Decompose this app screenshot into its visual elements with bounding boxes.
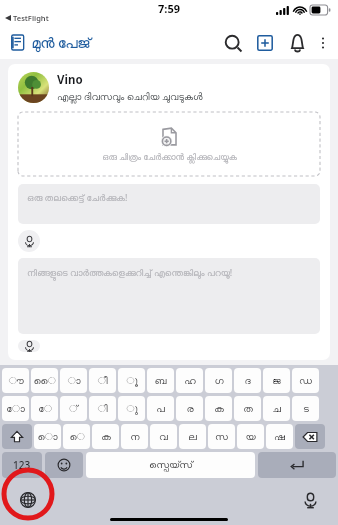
staticText: ൈ (33, 376, 56, 386)
button[interactable]: Return (258, 452, 336, 478)
button[interactable]: Profile picture (18, 72, 49, 103)
staticText: ബ (154, 376, 167, 386)
button[interactable]: നിങ്ങളുടെ വാർത്തകളെക്കുറിച്ച് എന്തെങ്കില… (18, 258, 320, 334)
staticText: പ (156, 404, 165, 414)
staticText: ി (97, 404, 108, 414)
button[interactable]: Dictation (296, 486, 324, 514)
button[interactable]: ര (176, 396, 203, 421)
staticText: ് (69, 404, 78, 414)
button[interactable]: ഒരു തലക്കെട്ട് ചേർക്കുക! (18, 184, 320, 224)
staticText: ോ (6, 404, 25, 414)
button[interactable]: ാ (60, 368, 87, 393)
staticText: ഹ (184, 376, 196, 386)
button[interactable]: മുൻ പേജ് (10, 33, 91, 52)
button[interactable]: Search (218, 28, 248, 58)
button[interactable]: More options (312, 32, 334, 54)
button[interactable]: ഒരു ചിത്രം ചേർക്കാൻ ക്ലിക്കുചെയ്യുക (18, 112, 320, 176)
staticText: ഒരു തലക്കെട്ട് ചേർക്കുക! (27, 191, 128, 203)
button[interactable]: ദ (234, 368, 261, 393)
button[interactable]: Voice input for body (18, 340, 40, 352)
button[interactable]: 123 (2, 452, 42, 478)
staticText: ു (126, 404, 138, 414)
button[interactable]: ജ (263, 368, 290, 393)
staticText: ര (186, 404, 194, 414)
staticText: ഗ (214, 376, 224, 386)
button[interactable]: ഷ (266, 424, 293, 449)
button[interactable]: ക (205, 396, 232, 421)
staticText: െ (69, 432, 85, 442)
staticText: ൂ (126, 376, 138, 386)
staticText: ക (214, 404, 224, 414)
staticText: ീ (97, 376, 108, 386)
staticText: വ (159, 432, 168, 442)
button[interactable]: ു (118, 396, 145, 421)
button[interactable]: പ (147, 396, 174, 421)
button[interactable]: െ (63, 424, 90, 449)
button[interactable]: ക (92, 424, 119, 449)
staticText: ന (130, 432, 140, 442)
staticText: 7:59 (158, 1, 180, 16)
staticText: ല (188, 432, 197, 442)
staticText: ൗ (8, 376, 24, 386)
button[interactable]: ച (263, 396, 290, 421)
staticText: 123 (13, 458, 31, 472)
staticText: ദ (244, 376, 251, 386)
staticText: മുൻ പേജ് (32, 33, 91, 52)
button[interactable]: ൊ (34, 424, 61, 449)
button[interactable]: ോ (2, 396, 29, 421)
button[interactable]: ഡ (292, 368, 319, 393)
button[interactable]: യ (237, 424, 264, 449)
staticText: ാ (67, 376, 81, 386)
button[interactable]: Notifications (282, 28, 312, 58)
button[interactable]: ി (89, 396, 116, 421)
staticText: യ (245, 432, 256, 442)
button[interactable]: ഹ (176, 368, 203, 393)
button[interactable]: ീ (89, 368, 116, 393)
button[interactable]: ഗ (205, 368, 232, 393)
staticText: ഡ (299, 376, 312, 386)
staticText: ത (243, 404, 253, 414)
staticText: സ (215, 432, 228, 442)
staticText: TestFlight (13, 13, 49, 23)
button[interactable]: വ (150, 424, 177, 449)
staticText: ജ (272, 376, 281, 386)
button[interactable]: േ (31, 396, 58, 421)
staticText: സ്പെയ്സ് (149, 460, 193, 470)
button[interactable]: Emoji (45, 452, 83, 478)
staticText: ക (101, 432, 111, 442)
staticText: നിങ്ങളുടെ വാർത്തകളെക്കുറിച്ച് എന്തെങ്കില… (27, 266, 233, 278)
button[interactable]: ത (234, 396, 261, 421)
button[interactable]: Add (250, 28, 280, 58)
staticText: ൊ (37, 432, 58, 442)
button[interactable]: ൈ (31, 368, 58, 393)
button[interactable]: ൂ (118, 368, 145, 393)
button[interactable]: ൗ (2, 368, 29, 393)
button[interactable]: സ (208, 424, 235, 449)
staticText: ഒരു ചിത്രം ചേർക്കാൻ ക്ലിക്കുചെയ്യുക (102, 151, 237, 163)
button[interactable]: ന (121, 424, 148, 449)
staticText: എല്ലാ ദിവസവും ചെറിയ ചുവടുകൾ (57, 90, 203, 103)
button[interactable]: Switch keyboard language (14, 486, 42, 514)
button[interactable]: ബ (147, 368, 174, 393)
staticText: ഷ (274, 432, 285, 442)
button[interactable]: ട (292, 396, 319, 421)
staticText: ട (303, 404, 309, 414)
button[interactable]: Key (2, 424, 32, 449)
staticText: Vino (57, 72, 83, 88)
staticText: ച (272, 404, 281, 414)
button[interactable]: ല (179, 424, 206, 449)
staticText: േ (38, 404, 52, 414)
button[interactable]: ് (60, 396, 87, 421)
button[interactable]: Key (295, 424, 325, 449)
button[interactable]: സ്പെയ്സ് (86, 452, 255, 478)
button[interactable]: Voice input for title (18, 230, 40, 252)
